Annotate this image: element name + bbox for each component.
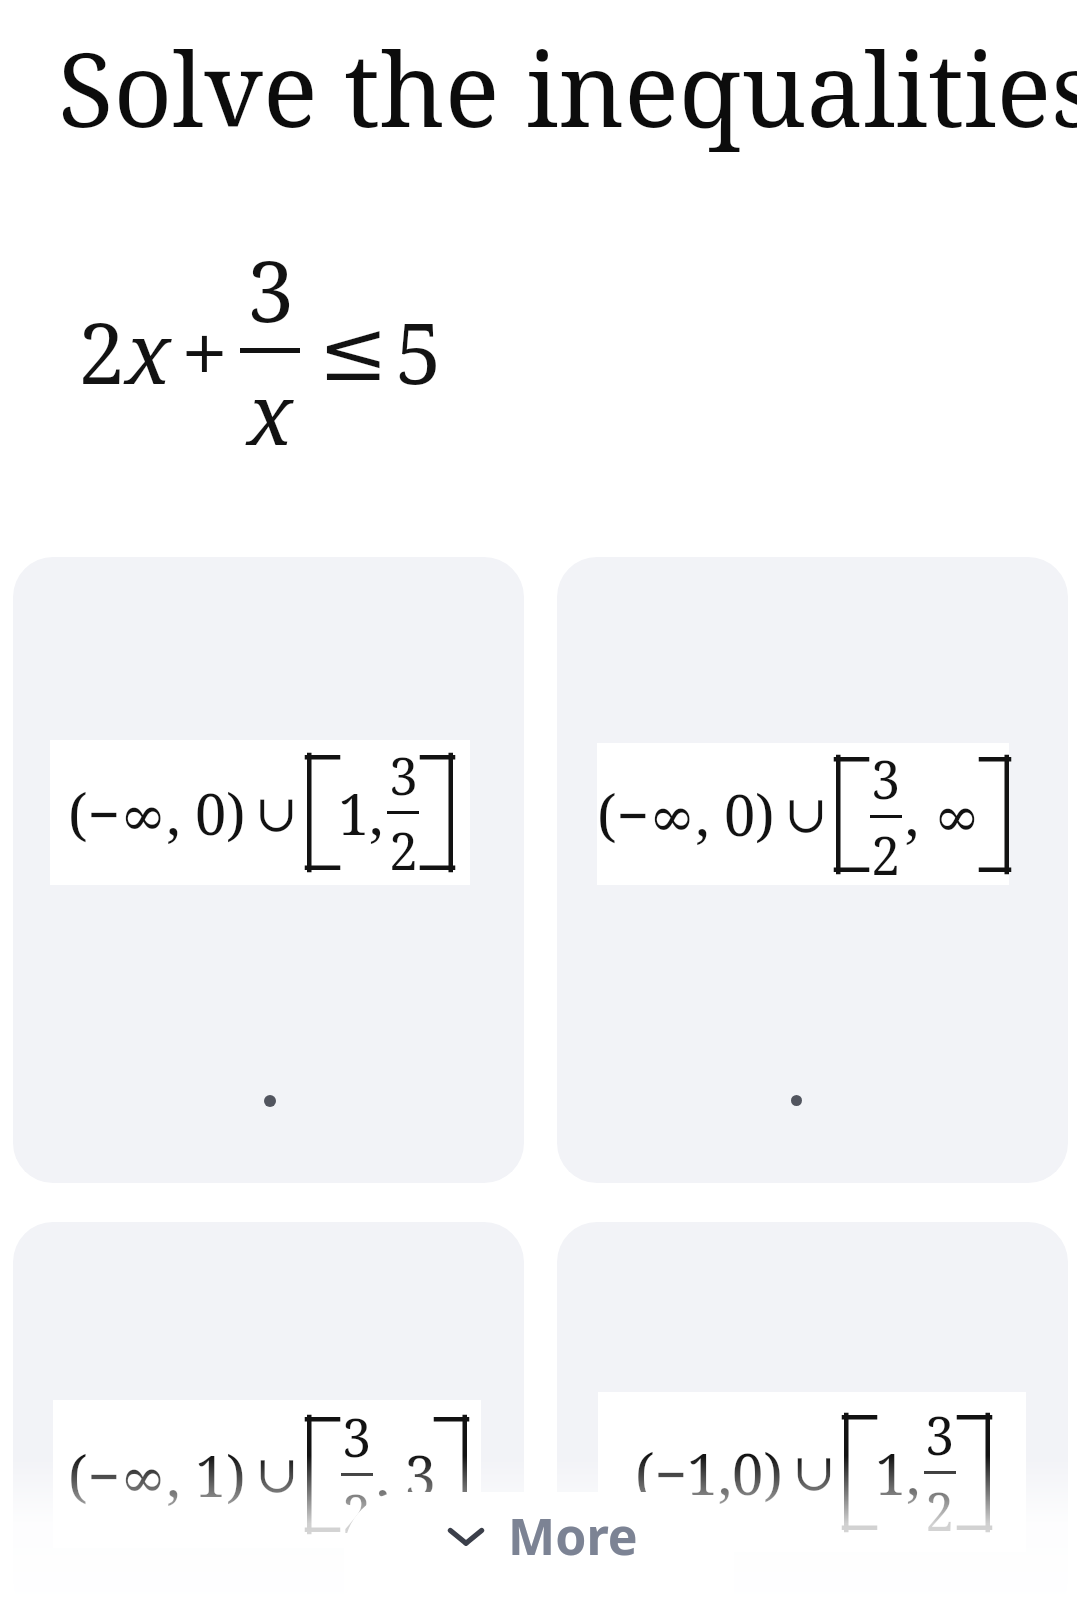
staticText: 2 [342, 1477, 372, 1548]
staticText: 3 [342, 1401, 372, 1472]
button[interactable]: (−1,0) [557, 1222, 1068, 1606]
staticText: ∪ [255, 783, 299, 843]
staticText: 3 [247, 232, 294, 346]
button[interactable]: (−∞, 0) [557, 557, 1068, 1183]
staticText: ∪ [255, 1444, 299, 1505]
staticText: ∪ [792, 1442, 836, 1503]
other: Show more answers [440, 1516, 492, 1556]
staticText: (−∞, 0) [597, 776, 775, 852]
staticText: x [247, 355, 293, 469]
staticText: , ∞ [905, 776, 981, 852]
staticText: + [181, 294, 228, 408]
staticText: ∪ [784, 784, 828, 845]
staticText: 3 [871, 743, 901, 814]
staticText: 2 [871, 819, 901, 885]
staticText: 2 [78, 294, 125, 408]
staticText: (−1,0) [635, 1435, 783, 1511]
staticText: 1, [338, 775, 384, 851]
staticText: 2 [925, 1475, 955, 1546]
button[interactable]: Show more answers [374, 1500, 704, 1572]
button[interactable]: (−∞, 1) [13, 1222, 524, 1606]
staticText: 3 [389, 740, 418, 810]
staticText: 1, [875, 1435, 921, 1511]
staticText: (−∞, 0) [68, 775, 246, 851]
staticText: 3 [925, 1399, 955, 1470]
staticText: , 3 [376, 1437, 436, 1513]
staticText: x [125, 294, 171, 408]
staticText: 5 [395, 294, 442, 408]
staticText: 2 [389, 815, 418, 885]
staticText: Solve the inequalities [58, 18, 1077, 157]
staticText: (−∞, 1) [68, 1437, 246, 1513]
button[interactable]: (−∞, 0) [13, 557, 524, 1183]
staticText: ≤ [318, 302, 389, 400]
staticText: More [508, 1502, 638, 1570]
